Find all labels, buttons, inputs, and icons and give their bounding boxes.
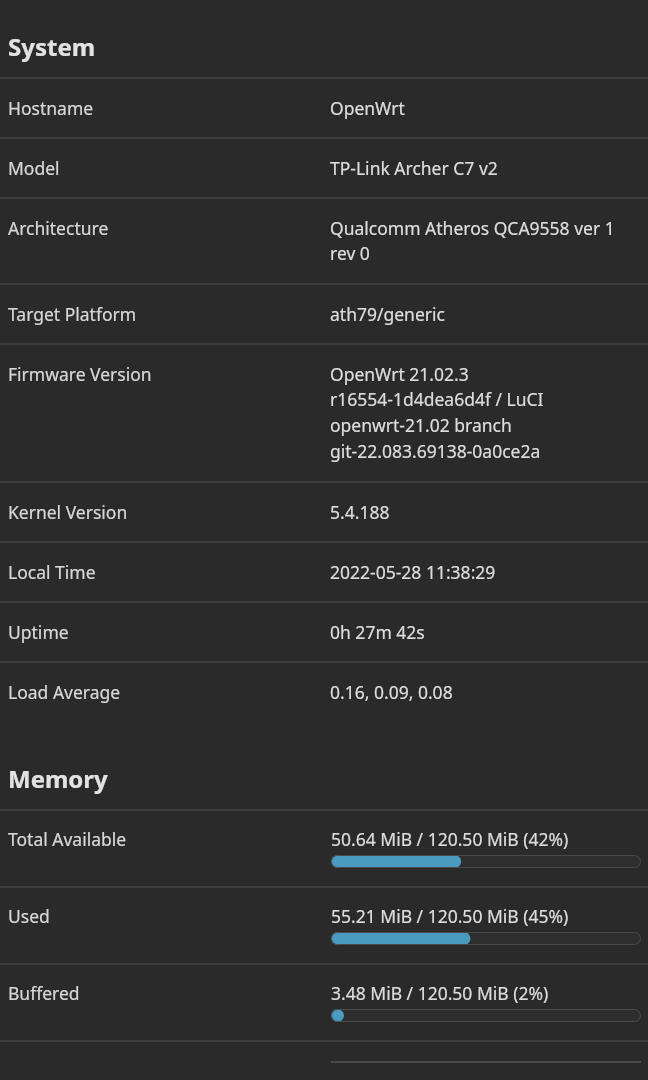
staticText: Qualcomm Atheros QCA9558 ver 1 rev 0	[330, 216, 640, 266]
button[interactable]: Target Platform	[0, 285, 648, 343]
staticText: 2022-05-28 11:38:29	[330, 560, 640, 584]
button[interactable]: Local Time	[0, 543, 648, 601]
staticText: TP-Link Archer C7 v2	[330, 156, 640, 180]
staticText: Target Platform	[8, 302, 330, 326]
button[interactable]: Buffered	[0, 965, 648, 1040]
staticText: Model	[8, 156, 330, 180]
button[interactable]: Model	[0, 139, 648, 197]
staticText: Firmware Version	[8, 362, 330, 386]
staticText: Load Average	[8, 680, 330, 704]
button[interactable]: Kernel Version	[0, 483, 648, 541]
button[interactable]: Load Average	[0, 663, 648, 721]
staticText: System	[8, 30, 96, 63]
button[interactable]: Used	[0, 888, 648, 963]
button[interactable]: Hostname	[0, 79, 648, 137]
button[interactable]: Cached	[0, 1042, 648, 1080]
staticText: 0.16, 0.09, 0.08	[330, 680, 640, 704]
staticText: Kernel Version	[8, 500, 330, 524]
staticText: Uptime	[8, 620, 330, 644]
staticText: Memory	[8, 762, 108, 795]
staticText: 3.48 MiB / 120.50 MiB (2%)	[331, 981, 549, 1005]
staticText: Used	[8, 904, 331, 928]
staticText: Architecture	[8, 216, 330, 240]
button[interactable]: Uptime	[0, 603, 648, 661]
staticText: 0h 27m 42s	[330, 620, 640, 644]
staticText: 13.88 MiB / 120.50 MiB (11%)	[331, 1058, 569, 1062]
staticText: 5.4.188	[330, 500, 640, 524]
staticText: OpenWrt	[330, 96, 640, 120]
staticText: Buffered	[8, 981, 331, 1005]
staticText: OpenWrt 21.02.3 r16554-1d4dea6d4f / LuCI…	[330, 362, 640, 464]
button[interactable]: Firmware Version	[0, 345, 648, 481]
staticText: 50.64 MiB / 120.50 MiB (42%)	[331, 827, 569, 851]
button[interactable]: Total Available	[0, 811, 648, 886]
staticText: Hostname	[8, 96, 330, 120]
button[interactable]: Architecture	[0, 199, 648, 283]
staticText: ath79/generic	[330, 302, 640, 326]
staticText: 55.21 MiB / 120.50 MiB (45%)	[331, 904, 569, 928]
staticText: Local Time	[8, 560, 330, 584]
staticText: Total Available	[8, 827, 331, 851]
